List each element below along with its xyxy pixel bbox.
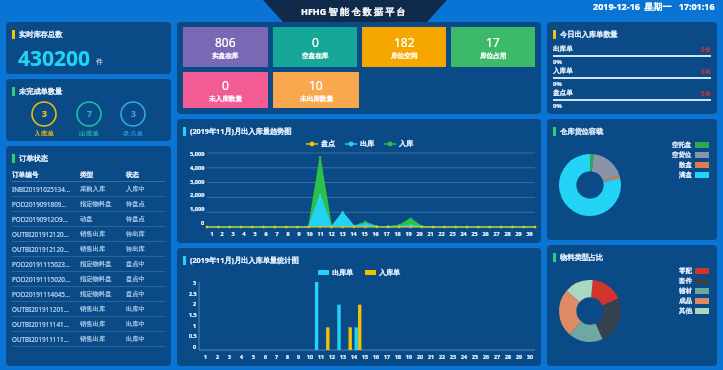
staticText: 1,000 (190, 205, 205, 213)
staticText: 10 (306, 230, 313, 237)
staticText: 0单 (701, 67, 711, 75)
staticText: 29 (515, 230, 522, 237)
staticText: 盘点中 (126, 260, 165, 268)
staticText: 盘点 (321, 139, 335, 148)
staticText: 辅材 (679, 287, 692, 295)
staticText: 19 (405, 230, 412, 237)
button[interactable]: 17 (451, 27, 535, 67)
button[interactable]: POD20191114045... (12, 287, 165, 301)
button[interactable]: 0 (273, 27, 357, 67)
staticText: 20 (416, 230, 423, 237)
button[interactable]: 空货位 (672, 151, 709, 159)
staticText: 指定物料盘 (80, 260, 126, 268)
staticText: 盘点单 (123, 129, 144, 136)
staticText: 零配 (679, 267, 692, 275)
button[interactable]: 满盘 (679, 171, 709, 179)
staticText: 3 (131, 108, 136, 120)
staticText: 今日出入库单数量 (560, 30, 618, 39)
staticText: 0% (553, 102, 562, 109)
staticText: 10 (307, 353, 313, 360)
staticText: 0.5 (189, 332, 197, 339)
staticText: 20 (417, 353, 423, 360)
staticText: 出库单 (332, 268, 353, 277)
staticText: 29 (516, 353, 522, 360)
staticText: 1.5 (189, 311, 197, 318)
staticText: 成品 (679, 297, 692, 305)
button[interactable]: 套件 (679, 277, 709, 285)
staticText: INBI20191025134... (12, 185, 80, 194)
staticText: 实时库存总数 (19, 30, 63, 39)
staticText: 16 (373, 353, 379, 360)
button[interactable]: OUTBI201912120... (12, 242, 165, 256)
staticText: 订单编号 (12, 171, 80, 179)
staticText: 27 (493, 230, 500, 237)
staticText: 空货位 (672, 151, 692, 159)
staticText: 物料类型占比 (560, 253, 604, 262)
staticText: POD20191115023... (12, 260, 80, 269)
staticText: 0 (201, 219, 205, 227)
staticText: OUTBI201912120... (12, 245, 80, 254)
staticText: 1 (210, 230, 214, 237)
staticText: 出库 (360, 139, 374, 148)
staticText: 0单 (701, 89, 711, 97)
staticText: 14 (351, 353, 357, 360)
button[interactable]: 辅材 (679, 287, 709, 295)
staticText: 4,000 (190, 164, 205, 172)
button[interactable]: 182 (362, 27, 446, 67)
staticText: 3 (228, 353, 231, 360)
staticText: 指定物料盘 (80, 200, 126, 208)
staticText: 库位空闲 (391, 52, 418, 60)
button[interactable]: OUTBI201911111... (12, 332, 165, 346)
staticText: 13 (340, 353, 346, 360)
button[interactable]: 806 (183, 27, 268, 67)
staticText: 3 (42, 108, 47, 120)
button[interactable]: OUTBI201912120... (12, 227, 165, 241)
button[interactable]: 空托盘 (672, 141, 709, 149)
staticText: 出库单 (553, 45, 573, 53)
staticText: 26 (482, 230, 489, 237)
staticText: 待出库 (126, 230, 165, 238)
staticText: 采购入库 (80, 185, 126, 193)
button[interactable]: 散盘 (679, 161, 709, 169)
staticText: 12 (328, 230, 335, 237)
staticText: OUTBI201912120... (12, 230, 80, 239)
staticText: 未出库数量 (300, 95, 333, 103)
button[interactable]: POD20190912O9... (12, 212, 165, 226)
staticText: 0% (553, 58, 562, 66)
staticText: OUTBI201911201... (12, 305, 80, 314)
button[interactable]: OUTBI201911201... (12, 302, 165, 316)
staticText: 9 (297, 230, 301, 237)
staticText: 8 (286, 230, 290, 237)
staticText: 1 (193, 322, 197, 329)
staticText: 销售出库 (80, 335, 126, 343)
staticText: 26 (483, 353, 489, 360)
button[interactable]: OUTBI201911141... (12, 317, 165, 331)
staticText: 入库中 (126, 185, 165, 193)
staticText: 10 (309, 77, 323, 93)
button[interactable]: POD2019091809... (12, 197, 165, 211)
button[interactable]: 零配 (679, 267, 709, 275)
staticText: 入库单 (379, 268, 400, 277)
staticText: 0 (312, 34, 319, 50)
button[interactable]: POD20191115023... (12, 257, 165, 271)
button[interactable]: 0 (183, 72, 268, 108)
staticText: 空托盘 (672, 141, 692, 149)
staticText: POD2019091809... (12, 200, 80, 209)
staticText: 12 (329, 353, 335, 360)
staticText: 出库中 (126, 335, 165, 343)
staticText: 5 (252, 353, 255, 360)
staticText: 销售出库 (80, 305, 126, 313)
button[interactable]: POD20191115020... (12, 272, 165, 286)
staticText: HFHG 智 能 仓 数 据 平 台 (301, 5, 406, 17)
staticText: 11 (317, 230, 324, 237)
staticText: 未完成单数量 (19, 87, 63, 96)
button[interactable]: 10 (273, 72, 359, 108)
button[interactable]: INBI20191025134... (12, 182, 165, 196)
staticText: 盘点中 (126, 275, 165, 283)
button[interactable]: 其他 (679, 307, 709, 315)
staticText: 入库单 (34, 129, 55, 136)
staticText: 2.5 (189, 290, 197, 297)
staticText: 24 (460, 230, 467, 237)
button[interactable]: 成品 (679, 297, 709, 305)
staticText: 8 (286, 353, 289, 360)
